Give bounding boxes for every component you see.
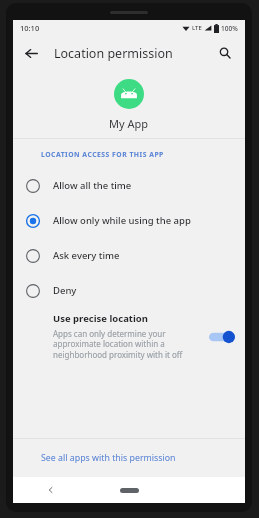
staticText: Allow only while using the app (53, 214, 191, 227)
staticText: Allow all the time (53, 179, 132, 192)
staticText: Location permission (54, 45, 173, 62)
button[interactable]: Allow all the time (13, 168, 245, 203)
staticText: 100% (221, 24, 238, 33)
staticText: 10:10 (20, 23, 40, 33)
button[interactable]: Back (19, 41, 43, 65)
staticText: Ask every time (53, 249, 120, 262)
other: Use precise location toggle (209, 330, 235, 344)
button[interactable]: Allow only while using the app (13, 203, 245, 238)
staticText: Apps can only determine your approximate… (53, 328, 183, 361)
staticText: LOCATION ACCESS FOR THIS APP (41, 150, 164, 159)
staticText: Deny (53, 284, 77, 297)
staticText: LTE (192, 24, 202, 32)
button[interactable]: Ask every time (13, 238, 245, 273)
button[interactable]: Search (213, 41, 237, 65)
button[interactable]: Use precise location (13, 308, 245, 371)
button[interactable]: Home (88, 477, 170, 503)
button[interactable]: Back (13, 477, 88, 503)
button[interactable]: Deny (13, 273, 245, 308)
staticText: My App (109, 116, 149, 131)
button[interactable]: See all apps with this permission (13, 439, 245, 477)
staticText: Use precise location (53, 312, 148, 325)
staticText: See all apps with this permission (41, 452, 176, 464)
